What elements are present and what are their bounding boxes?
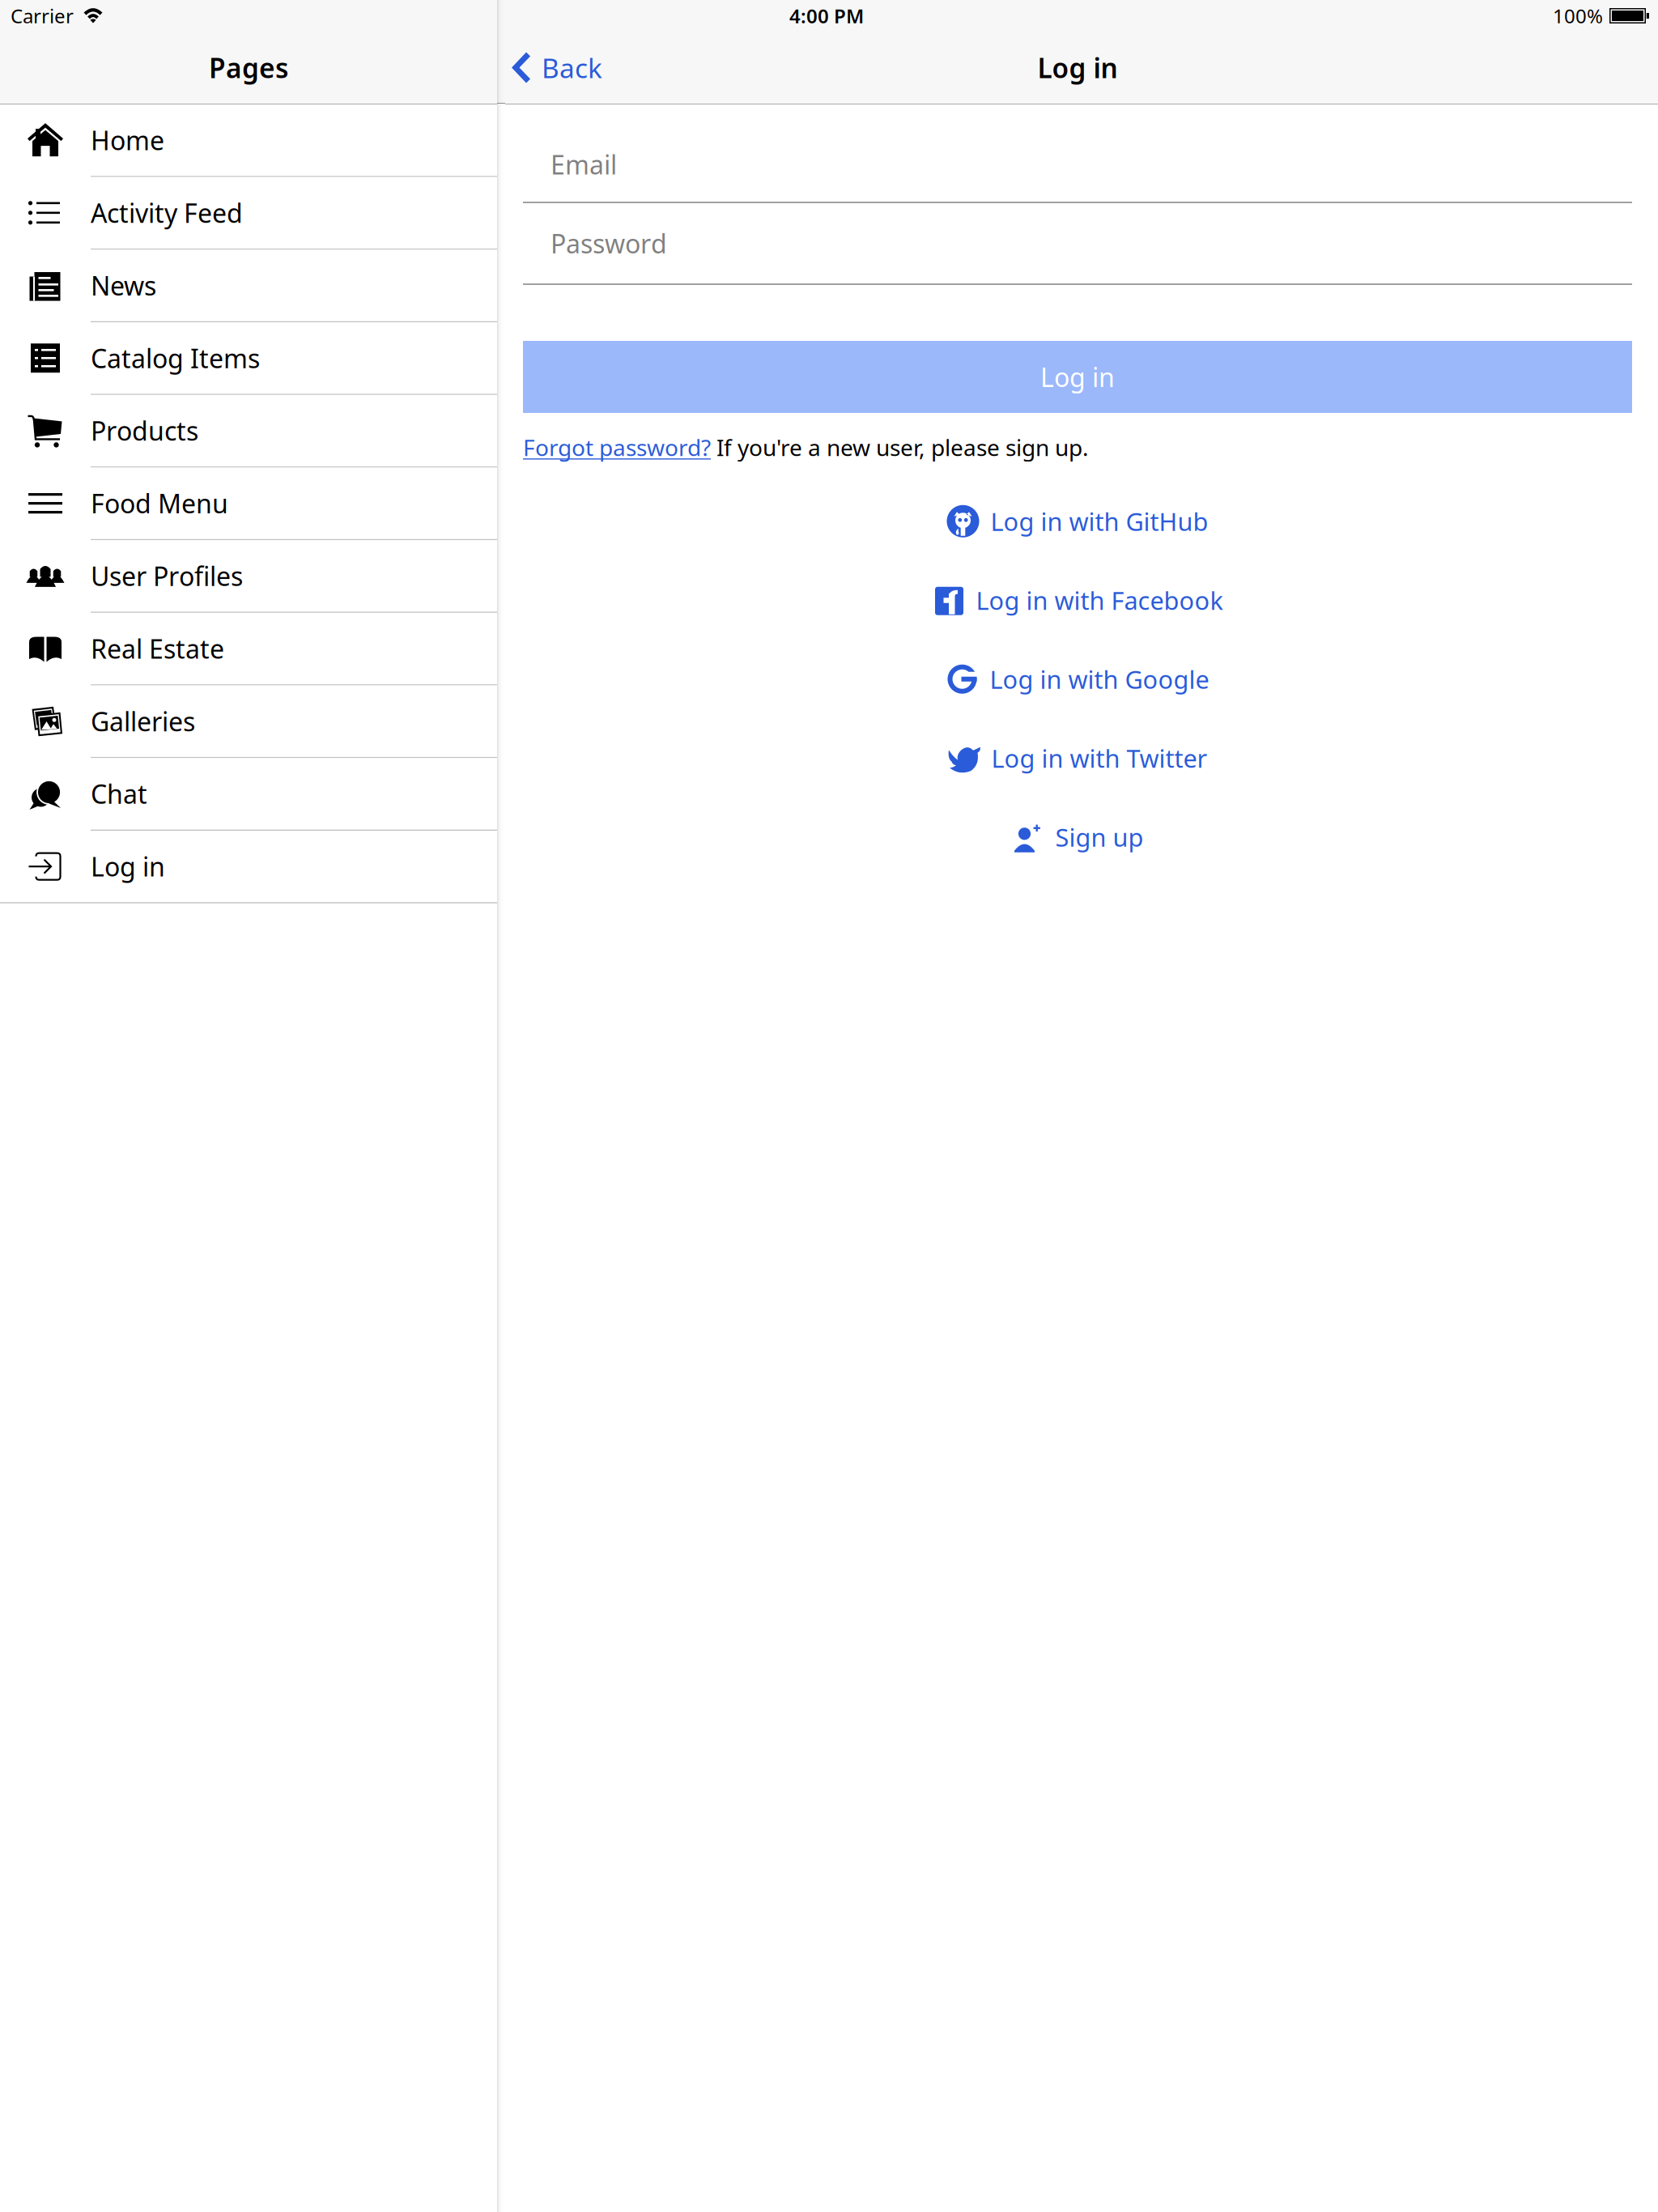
staticText: Log in <box>1037 50 1118 86</box>
staticText: Pages <box>209 50 288 86</box>
button[interactable]: Log in <box>0 831 497 903</box>
staticText: 4:00 PM <box>789 3 864 29</box>
staticText: Galleries <box>91 704 195 738</box>
staticText: Products <box>91 413 198 448</box>
staticText: Log in with GitHub <box>991 505 1208 538</box>
button[interactable]: Home <box>0 104 497 177</box>
staticText: Log in with Facebook <box>976 584 1223 617</box>
staticText: Forgot password? <box>523 432 711 462</box>
button[interactable]: Food Menu <box>0 468 497 540</box>
button[interactable]: Forgot password? <box>523 432 711 462</box>
button[interactable]: Sign up <box>523 798 1632 876</box>
staticText: Sign up <box>1055 821 1144 853</box>
staticText: Log in <box>91 849 165 884</box>
staticText: Email <box>551 147 617 182</box>
button[interactable]: Real Estate <box>0 613 497 685</box>
staticText: Catalog Items <box>91 341 260 375</box>
staticText: Carrier <box>11 3 74 29</box>
staticText: If you're a new user, please sign up. <box>711 432 1089 462</box>
button[interactable]: Chat <box>0 758 497 831</box>
button[interactable]: Activity Feed <box>0 177 497 250</box>
button[interactable]: Galleries <box>0 685 497 758</box>
button[interactable]: Back <box>497 32 602 104</box>
staticText: 100% <box>1553 3 1603 29</box>
staticText: Home <box>91 123 164 157</box>
button[interactable]: Log in with GitHub <box>523 482 1632 561</box>
staticText: Log in with Google <box>990 663 1209 696</box>
staticText: Chat <box>91 777 147 811</box>
button[interactable]: Log in with Facebook <box>523 561 1632 640</box>
staticText: Food Menu <box>91 486 228 521</box>
button[interactable]: Products <box>0 395 497 468</box>
staticText: Back <box>542 50 602 86</box>
staticText: Password <box>551 226 667 261</box>
button[interactable]: News <box>0 250 497 322</box>
button[interactable]: Catalog Items <box>0 322 497 395</box>
staticText: Activity Feed <box>91 196 243 230</box>
button[interactable]: Log in with Google <box>523 640 1632 719</box>
button[interactable]: Log in with Twitter <box>523 719 1632 798</box>
staticText: Real Estate <box>91 631 224 666</box>
staticText: User Profiles <box>91 559 243 593</box>
button[interactable]: Log in <box>523 341 1632 413</box>
staticText: Log in <box>1040 360 1115 394</box>
staticText: Log in with Twitter <box>991 742 1207 775</box>
staticText: News <box>91 268 156 303</box>
button[interactable]: User Profiles <box>0 540 497 613</box>
